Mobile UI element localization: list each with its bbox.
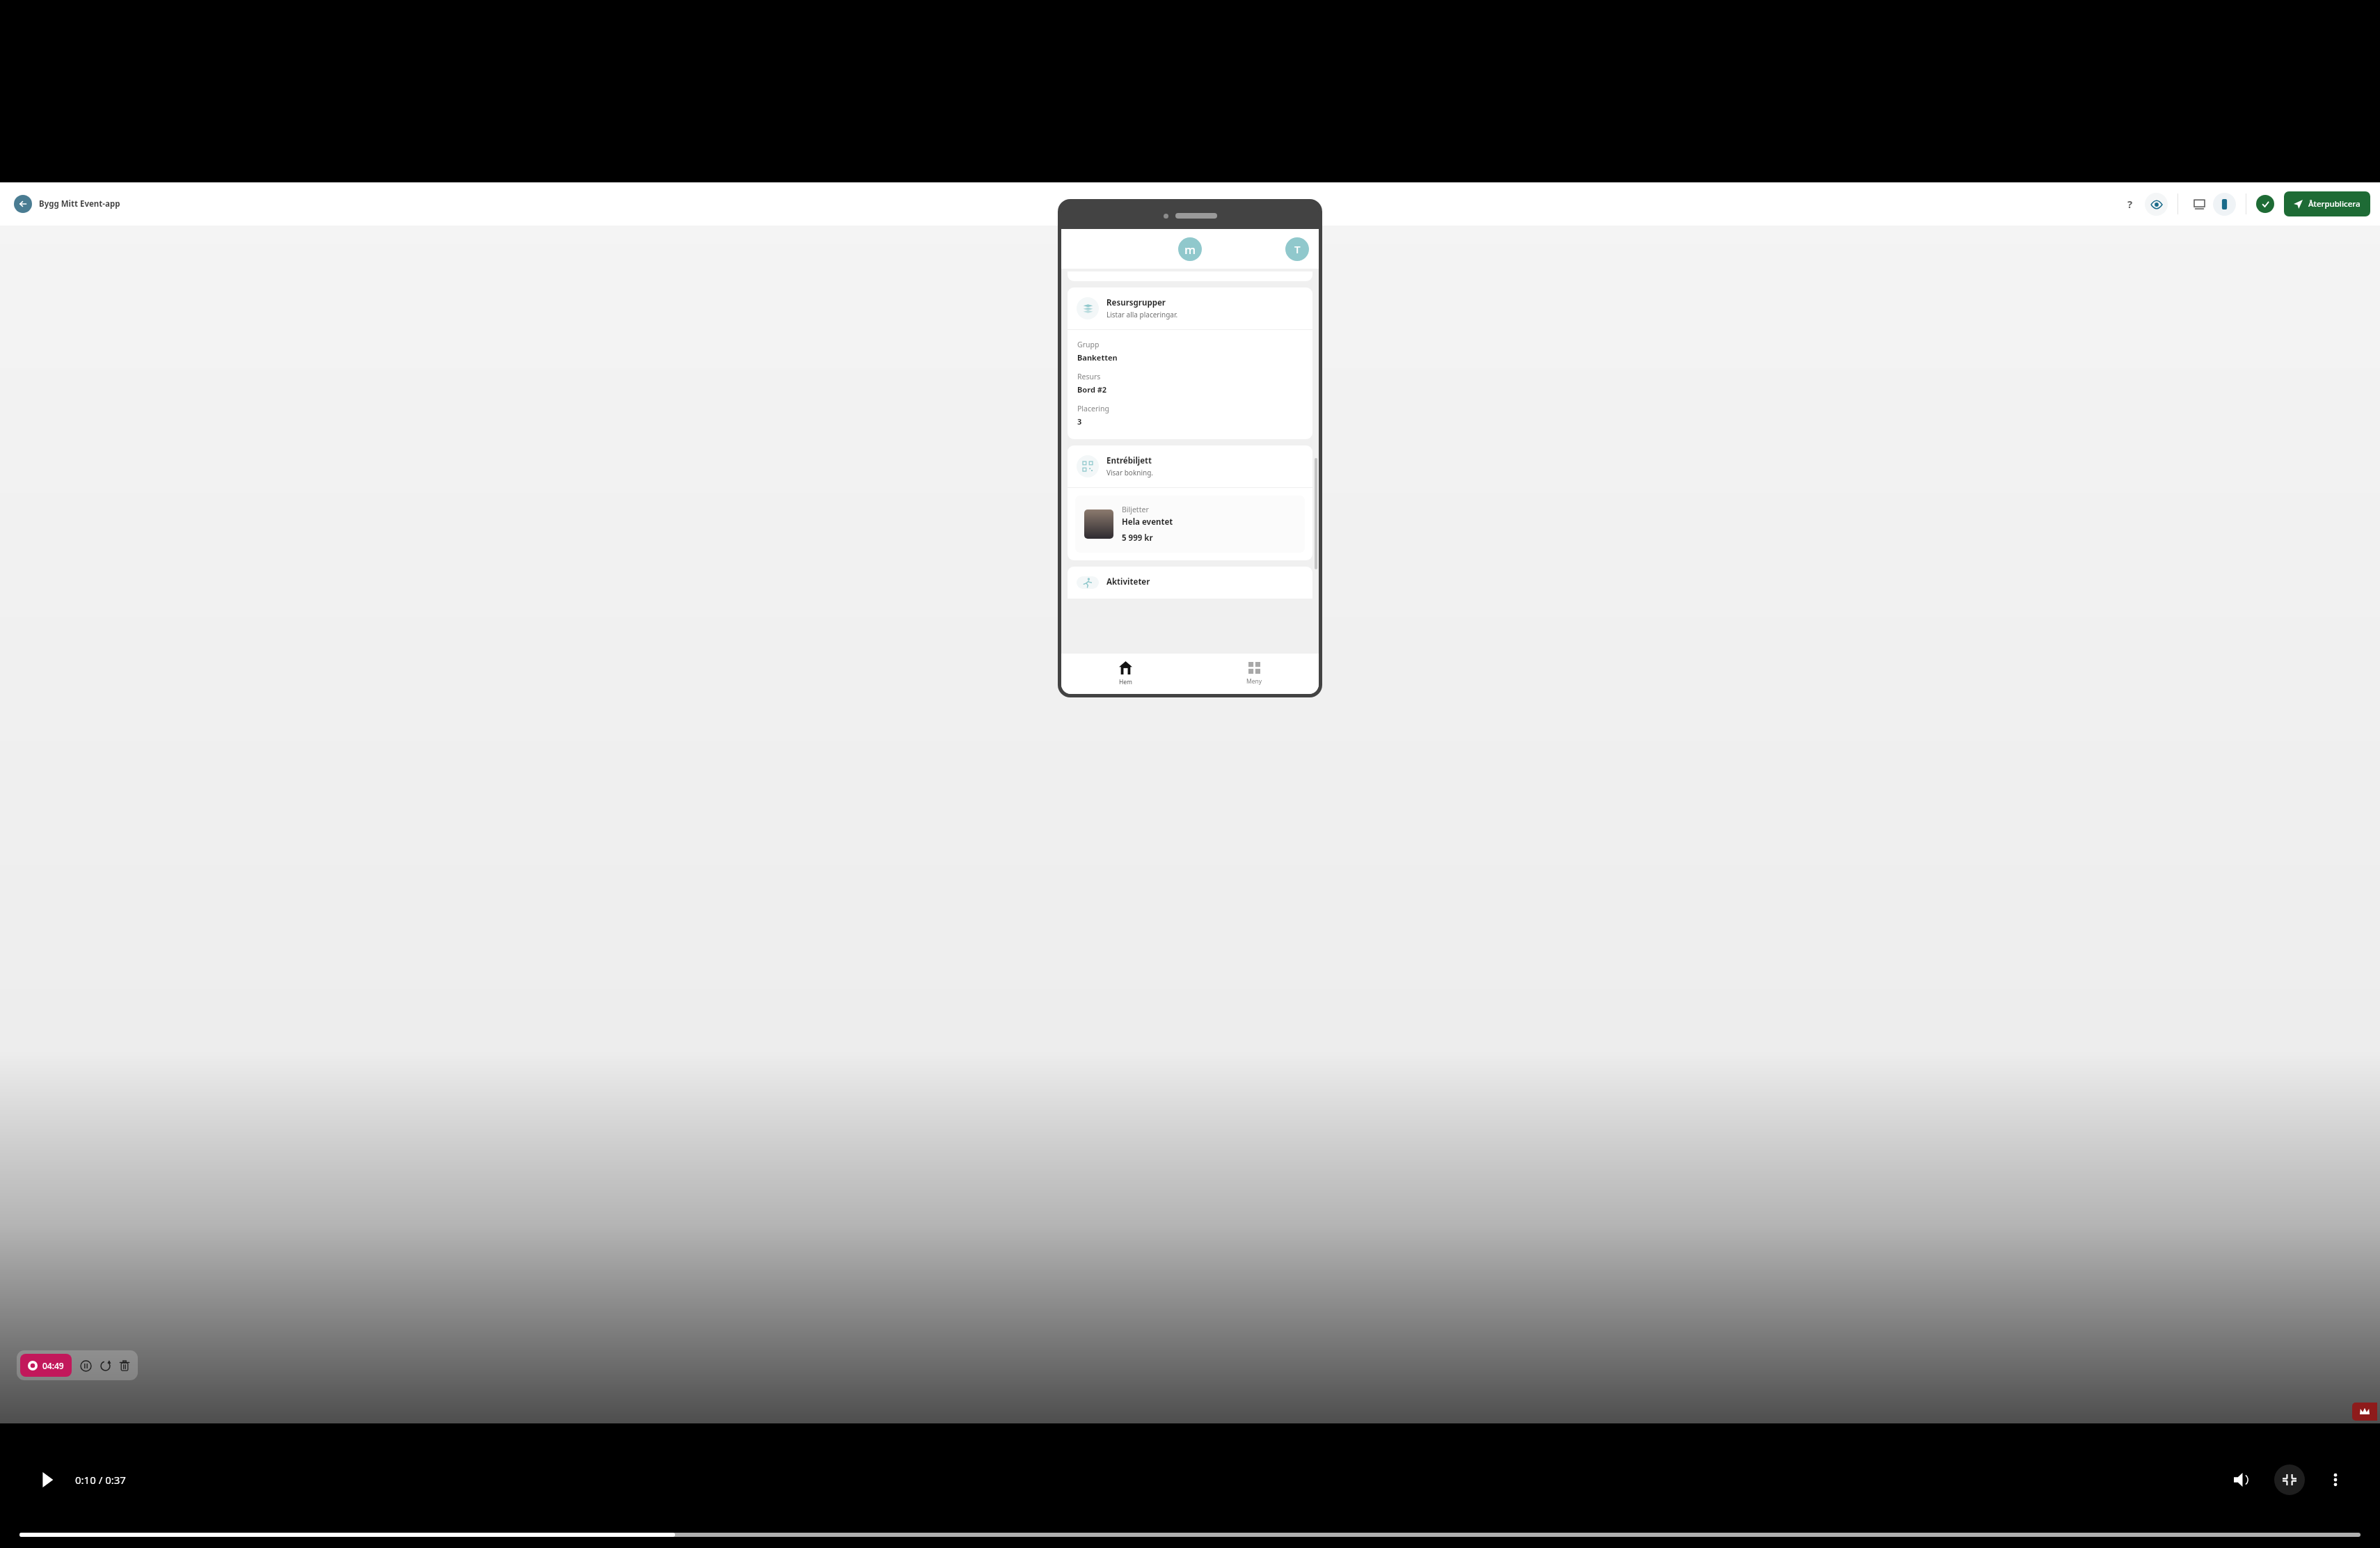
button[interactable]: Pause bbox=[76, 1356, 95, 1375]
button[interactable]: Meny bbox=[1190, 654, 1319, 694]
button[interactable]: Biljetter bbox=[1075, 496, 1305, 553]
staticText: Resurs bbox=[1077, 372, 1101, 381]
staticText: ? bbox=[2127, 197, 2133, 211]
button[interactable]: Back bbox=[10, 192, 125, 216]
staticText: Hela eventet bbox=[1122, 516, 1173, 528]
button[interactable]: Restart bbox=[95, 1356, 115, 1375]
button[interactable]: 04:49 bbox=[20, 1354, 72, 1377]
button[interactable]: Preview bbox=[2145, 193, 2168, 216]
staticText: Bygg Mitt Event-app bbox=[39, 198, 120, 210]
button[interactable]: Aktiviteter bbox=[1068, 567, 1312, 599]
button[interactable]: Mobile view bbox=[2213, 193, 2236, 216]
button[interactable]: Volume bbox=[2227, 1464, 2258, 1495]
button[interactable]: Hem bbox=[1061, 654, 1190, 694]
staticText: Aktiviteter bbox=[1106, 576, 1150, 587]
staticText: T bbox=[1294, 242, 1301, 256]
staticText: Meny bbox=[1246, 677, 1262, 686]
button[interactable]: Upgrade bbox=[2352, 1403, 2377, 1421]
button[interactable]: Exit fullscreen bbox=[2274, 1464, 2305, 1495]
staticText: Hem bbox=[1119, 678, 1133, 686]
staticText: Banketten bbox=[1077, 352, 1118, 363]
button[interactable]: Profile bbox=[1285, 237, 1309, 261]
staticText: Bord #2 bbox=[1077, 384, 1107, 395]
staticText: Listar alla placeringar. bbox=[1106, 310, 1178, 319]
button[interactable]: Entrébiljett bbox=[1068, 445, 1312, 560]
staticText: 04:49 bbox=[42, 1360, 64, 1371]
button[interactable]: Resursgrupper bbox=[1068, 287, 1312, 439]
button[interactable]: Återpublicera bbox=[2284, 191, 2370, 216]
button[interactable]: Saved bbox=[2256, 195, 2274, 213]
staticText: Entrébiljett bbox=[1106, 455, 1152, 466]
staticText: Biljetter bbox=[1122, 505, 1149, 514]
button[interactable]: More options bbox=[2322, 1466, 2349, 1494]
button[interactable]: Logo bbox=[1178, 237, 1202, 261]
staticText: Visar bokning. bbox=[1106, 468, 1154, 477]
other: Back bbox=[14, 195, 32, 213]
staticText: 0:10 / 0:37 bbox=[75, 1473, 126, 1487]
button[interactable]: Delete bbox=[115, 1356, 134, 1375]
button[interactable]: Play bbox=[33, 1466, 61, 1494]
staticText: Grupp bbox=[1077, 340, 1100, 349]
staticText: Återpublicera bbox=[2308, 198, 2361, 210]
staticText: Resursgrupper bbox=[1106, 297, 1166, 308]
staticText: 5 999 kr bbox=[1122, 532, 1153, 544]
staticText: Placering bbox=[1077, 404, 1109, 413]
button[interactable]: Help bbox=[2118, 192, 2142, 216]
button[interactable]: Desktop view bbox=[2188, 193, 2210, 215]
staticText: 3 bbox=[1077, 416, 1082, 427]
staticText: m bbox=[1184, 242, 1196, 258]
